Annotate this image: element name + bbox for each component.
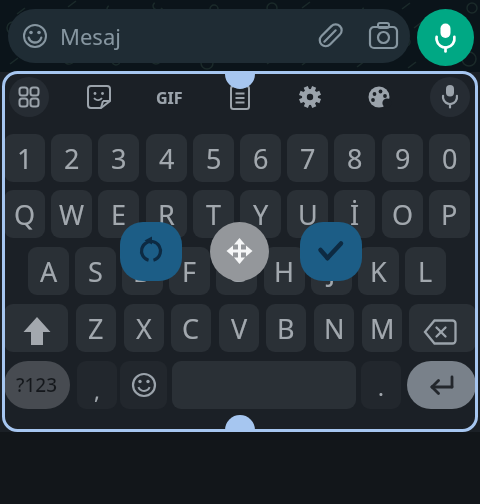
button[interactable] [210,222,269,281]
staticText: İ [350,196,360,233]
staticText: J [328,253,336,290]
staticText: Z [88,310,104,347]
staticText: GIF [156,87,183,109]
staticText: P [441,196,458,233]
staticText: A [40,253,58,290]
staticText: 2 [64,140,80,177]
staticText: F [182,253,197,290]
button[interactable]: S [75,247,116,295]
staticText: Mesaj [60,21,121,51]
button[interactable]: E [98,190,139,238]
staticText: S [88,253,103,290]
button[interactable]: Y [240,190,281,238]
button[interactable]: 5 [193,134,234,182]
button[interactable] [120,361,167,409]
staticText: E [111,196,127,233]
button[interactable]: M [362,304,402,352]
staticText: 7 [300,140,316,177]
staticText: T [206,196,222,233]
staticText: 6 [253,140,269,177]
button[interactable]: 9 [382,134,423,182]
button[interactable]: 0 [429,134,470,182]
staticText: ?123 [16,372,58,398]
button[interactable]: V [219,304,259,352]
staticText: M [370,310,395,347]
staticText: X [136,310,152,347]
staticText: L [418,253,433,290]
button[interactable] [300,222,362,281]
button[interactable]: L [405,247,446,295]
staticText: 5 [206,140,222,177]
button[interactable] [120,222,182,281]
button[interactable] [9,77,49,117]
staticText: H [274,253,295,290]
button[interactable] [409,304,476,352]
button[interactable]: ?123 [4,361,70,409]
staticText: C [182,310,200,347]
button[interactable]: G [216,247,257,295]
button[interactable]: P [429,190,470,238]
staticText: B [277,310,295,347]
button[interactable]: , [77,361,117,409]
button[interactable]: B [266,304,306,352]
button[interactable]: 8 [334,134,375,182]
button[interactable]: 4 [146,134,187,182]
staticText: 0 [442,140,458,177]
button[interactable]: K [358,247,399,295]
button[interactable]: F [169,247,210,295]
staticText: N [324,310,345,347]
button[interactable]: 1 [4,134,45,182]
button[interactable]: W [51,190,92,238]
button[interactable]: 6 [240,134,281,182]
button[interactable] [407,361,476,409]
staticText: K [370,253,387,290]
staticText: G [227,253,247,290]
staticText: 3 [111,140,127,177]
staticText: Q [14,196,36,233]
button[interactable]: C [171,304,211,352]
button[interactable]: O [382,190,423,238]
staticText: 9 [395,140,411,177]
staticText: W [59,196,85,233]
button[interactable]: A [28,247,69,295]
staticText: . [378,372,384,402]
staticText: R [158,196,175,233]
button[interactable]: Mesaj [8,9,410,63]
button[interactable]: 2 [51,134,92,182]
button[interactable] [430,77,470,117]
button[interactable]: Z [76,304,116,352]
button[interactable] [417,9,474,66]
staticText: V [231,310,248,347]
button[interactable]: R [146,190,187,238]
staticText: D [133,253,153,290]
button[interactable]: D [122,247,163,295]
staticText: O [392,196,414,233]
button[interactable] [4,304,68,352]
button[interactable]: Q [4,190,45,238]
button[interactable]: 7 [287,134,328,182]
staticText: 8 [347,140,363,177]
button[interactable]: H [264,247,305,295]
staticText: 1 [17,140,33,177]
button[interactable]: U [287,190,328,238]
staticText: U [298,196,318,233]
button[interactable]: N [314,304,354,352]
staticText: Y [253,196,269,233]
staticText: 4 [159,140,175,177]
button[interactable]: İ [334,190,375,238]
button[interactable]: 3 [98,134,139,182]
button[interactable]: J [311,247,352,295]
staticText: , [94,375,100,405]
button[interactable]: . [361,361,401,409]
button[interactable]: X [124,304,164,352]
button[interactable]: T [193,190,234,238]
